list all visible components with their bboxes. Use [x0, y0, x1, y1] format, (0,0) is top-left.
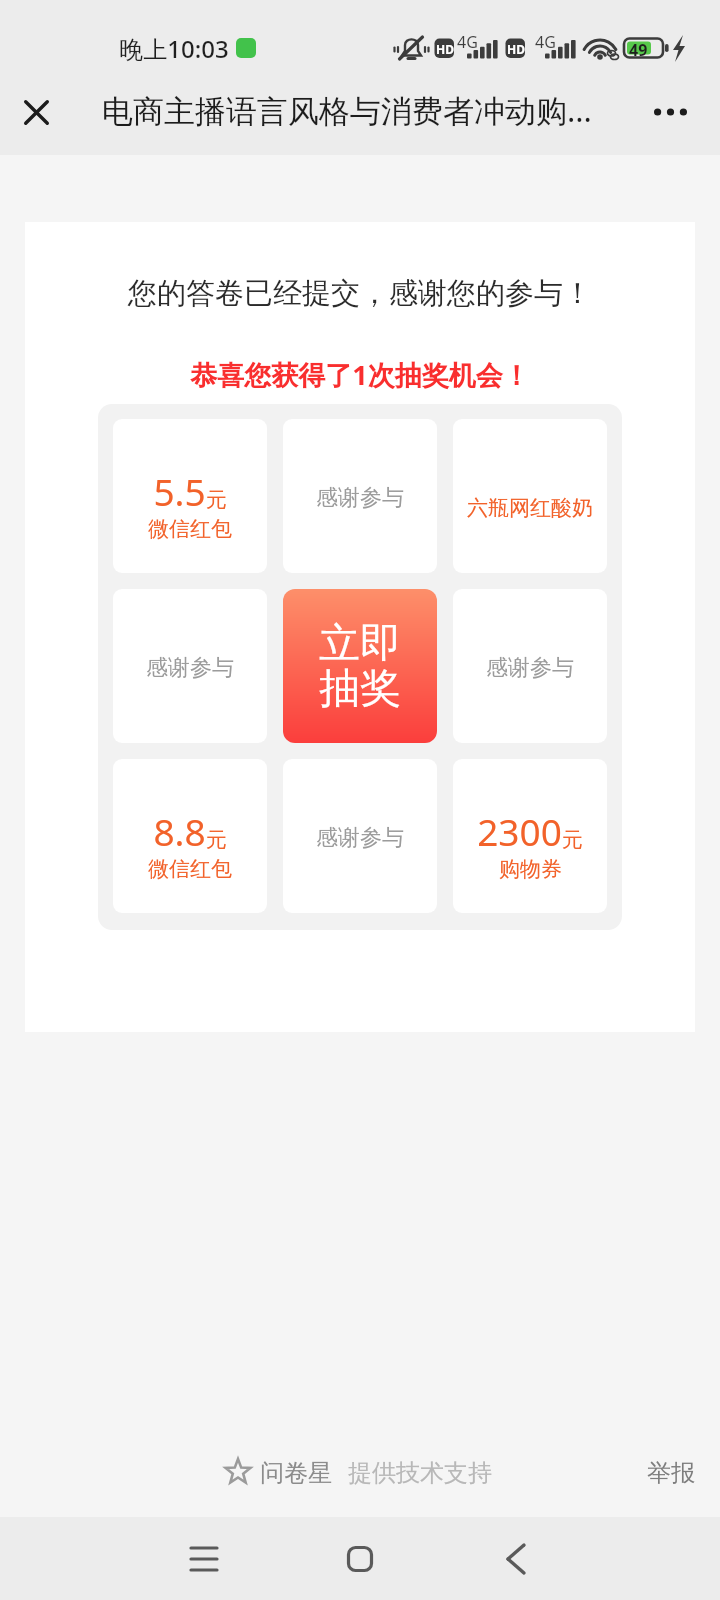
staticText: 元 [562, 827, 583, 853]
button[interactable]: 六瓶网红酸奶 [453, 419, 607, 573]
staticText: HD [436, 41, 454, 57]
staticText: 8.8 [153, 806, 206, 856]
button[interactable]: 2300 [453, 759, 607, 913]
button[interactable]: Close [10, 84, 62, 136]
staticText: 恭喜您获得了1次抽奖机会！ [190, 356, 530, 393]
button[interactable]: 8.8 [113, 759, 267, 913]
staticText: 元 [206, 827, 227, 853]
staticText: 购物券 [499, 856, 562, 882]
staticText: 49 [629, 39, 648, 61]
staticText: 提供技术支持 [348, 1458, 492, 1488]
button[interactable]: 立即 抽奖 [283, 589, 437, 743]
button[interactable]: Recent apps [164, 1519, 244, 1599]
button[interactable]: Back [476, 1519, 556, 1599]
staticText: 4G [535, 31, 556, 53]
staticText: 元 [206, 487, 227, 513]
staticText: 2300 [477, 806, 562, 856]
staticText: 5.5 [153, 466, 206, 516]
staticText: 立即 抽奖 [319, 618, 401, 714]
button[interactable]: Home [320, 1519, 400, 1599]
staticText: 六瓶网红酸奶 [467, 495, 593, 521]
button[interactable]: 感谢参与 [283, 759, 437, 913]
staticText: 4G [457, 31, 478, 53]
staticText: 感谢参与 [316, 824, 404, 852]
staticText: 举报 [647, 1458, 695, 1488]
staticText: 感谢参与 [316, 484, 404, 512]
button[interactable]: 感谢参与 [453, 589, 607, 743]
staticText: 微信红包 [148, 516, 232, 542]
staticText: HD [507, 41, 525, 57]
staticText: 电商主播语言风格与消费者冲动购... [102, 89, 592, 131]
button[interactable]: 感谢参与 [283, 419, 437, 573]
button[interactable]: More options [644, 84, 696, 136]
staticText: 问卷星 [260, 1458, 332, 1488]
staticText: 感谢参与 [146, 654, 234, 682]
staticText: 晚上10:03 [119, 32, 229, 65]
button[interactable]: 5.5 [113, 419, 267, 573]
staticText: 感谢参与 [486, 654, 574, 682]
button[interactable]: 举报 [639, 1450, 703, 1496]
staticText: 微信红包 [148, 856, 232, 882]
staticText: 您的答卷已经提交，感谢您的参与！ [128, 275, 592, 312]
button[interactable]: 感谢参与 [113, 589, 267, 743]
